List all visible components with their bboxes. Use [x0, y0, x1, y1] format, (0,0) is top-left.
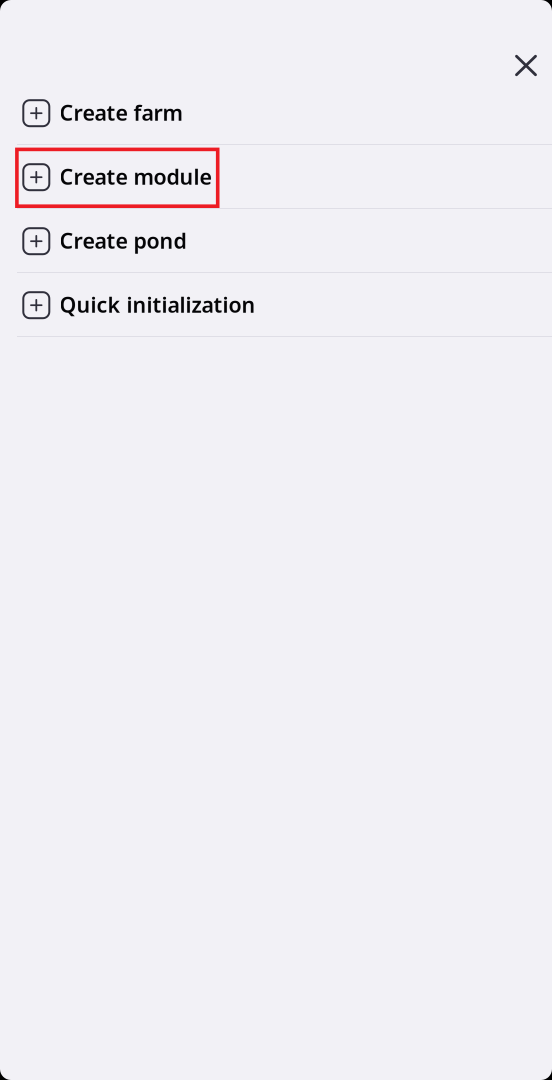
staticText: Create farm	[60, 98, 183, 127]
staticText: Quick initialization	[60, 290, 256, 319]
button[interactable]: Create pond	[0, 209, 552, 273]
button[interactable]: Create farm	[0, 81, 552, 145]
button[interactable]: Create module	[0, 145, 552, 209]
staticText: Create pond	[60, 226, 187, 255]
button[interactable]: Close	[504, 43, 548, 87]
staticText: Create module	[60, 162, 212, 191]
button[interactable]: Quick initialization	[0, 273, 552, 337]
